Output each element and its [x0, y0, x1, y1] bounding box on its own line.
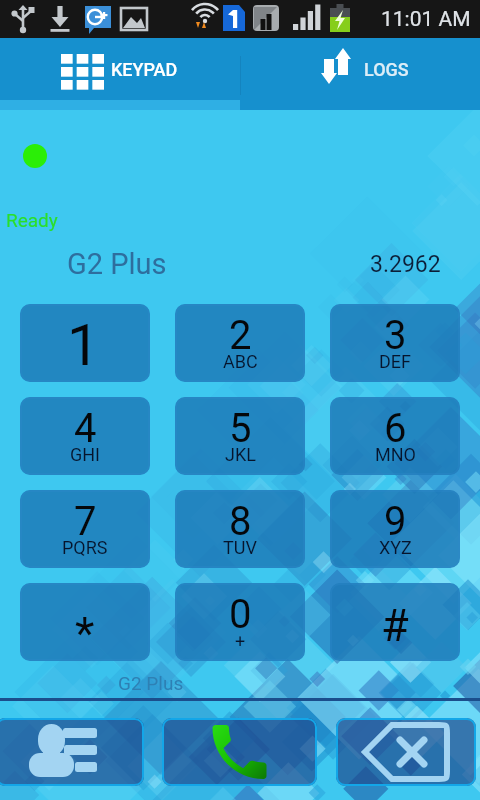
- staticText: ABC: [223, 351, 258, 372]
- staticText: XYZ: [379, 537, 412, 558]
- button[interactable]: LOGS: [240, 38, 480, 110]
- button[interactable]: *: [20, 583, 150, 661]
- staticText: Ready: [6, 209, 58, 231]
- staticText: MNO: [375, 444, 416, 465]
- button[interactable]: 4: [20, 397, 150, 475]
- staticText: #: [381, 599, 409, 652]
- button[interactable]: 6: [330, 397, 460, 475]
- staticText: 4: [74, 405, 97, 452]
- button[interactable]: 0: [175, 583, 305, 661]
- staticText: GHI: [70, 444, 100, 465]
- button[interactable]: 5: [175, 397, 305, 475]
- button[interactable]: 2: [175, 304, 305, 382]
- staticText: 11:01 AM: [381, 7, 471, 32]
- staticText: G2 Plus: [118, 672, 184, 694]
- button[interactable]: Contacts: [0, 718, 144, 786]
- button[interactable]: 7: [20, 490, 150, 568]
- button[interactable]: 3: [330, 304, 460, 382]
- button[interactable]: 8: [175, 490, 305, 568]
- staticText: KEYPAD: [111, 59, 178, 80]
- button[interactable]: 9: [330, 490, 460, 568]
- staticText: 3.2962: [370, 251, 441, 278]
- button[interactable]: Call: [162, 718, 317, 786]
- staticText: G2 Plus: [67, 247, 167, 281]
- button[interactable]: 1: [20, 304, 150, 382]
- staticText: 5: [229, 405, 252, 452]
- staticText: +: [235, 630, 246, 651]
- staticText: PQRS: [62, 537, 108, 558]
- button[interactable]: #: [330, 583, 460, 661]
- staticText: 9: [384, 498, 407, 545]
- staticText: 7: [74, 498, 97, 545]
- staticText: 2: [229, 312, 252, 359]
- button[interactable]: KEYPAD: [0, 38, 240, 110]
- staticText: JKL: [225, 444, 256, 465]
- button[interactable]: Backspace: [336, 718, 476, 786]
- staticText: 3: [384, 312, 407, 359]
- staticText: DEF: [379, 351, 411, 372]
- staticText: 8: [229, 498, 252, 545]
- staticText: LOGS: [364, 59, 409, 80]
- staticText: *: [75, 607, 95, 660]
- staticText: TUV: [223, 537, 257, 558]
- staticText: 0: [229, 591, 252, 638]
- staticText: 6: [384, 405, 407, 452]
- staticText: 1: [67, 311, 100, 379]
